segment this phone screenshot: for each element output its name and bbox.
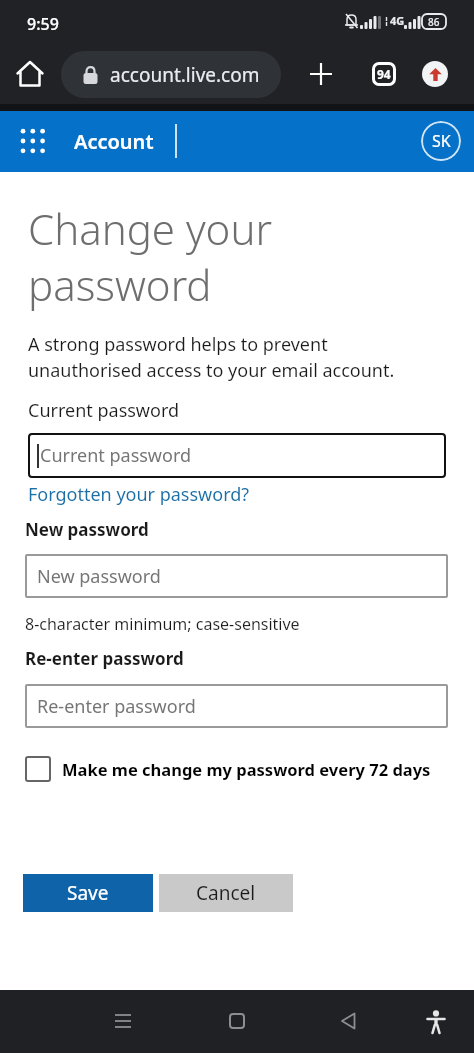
staticText: Current password <box>28 398 180 423</box>
staticText: 86 <box>428 15 440 29</box>
staticText: SK <box>432 130 451 152</box>
staticText: account.live.com <box>110 62 260 88</box>
button[interactable] <box>104 1001 144 1041</box>
staticText: New password <box>25 518 149 541</box>
button[interactable]: Account <box>74 128 154 155</box>
button[interactable]: Forgotten your password? <box>28 482 250 507</box>
button[interactable] <box>303 56 339 92</box>
staticText: Cancel <box>196 880 256 906</box>
button[interactable] <box>329 1001 369 1041</box>
button[interactable]: Make me change my password every 72 days <box>25 756 431 782</box>
button[interactable]: Re-enter password <box>25 684 448 728</box>
staticText: 8-character minimum; case-sensitive <box>25 613 300 635</box>
button[interactable]: New password <box>25 554 448 598</box>
staticText: Save <box>67 880 109 906</box>
staticText: 4G <box>390 13 405 28</box>
button[interactable]: SK <box>421 121 461 161</box>
button[interactable] <box>13 121 53 161</box>
button[interactable] <box>422 61 448 87</box>
staticText: Current password <box>40 443 192 468</box>
staticText: A strong password helps to prevent unaut… <box>28 332 395 383</box>
staticText: 9:59 <box>27 13 59 35</box>
button[interactable]: 94 <box>366 56 402 92</box>
staticText: 94 <box>377 66 391 82</box>
button[interactable] <box>12 56 48 92</box>
button[interactable]: Cancel <box>159 874 293 912</box>
button[interactable]: Save <box>23 874 153 912</box>
staticText: Re-enter password <box>37 694 196 719</box>
button[interactable]: Current password <box>28 433 446 478</box>
button[interactable]: account.live.com <box>61 51 281 98</box>
staticText: Re-enter password <box>25 647 184 670</box>
staticText: New password <box>37 564 161 589</box>
staticText: Change your password <box>28 200 272 313</box>
button[interactable] <box>217 1001 257 1041</box>
button[interactable] <box>416 1002 456 1042</box>
staticText: Make me change my password every 72 days <box>62 758 431 780</box>
